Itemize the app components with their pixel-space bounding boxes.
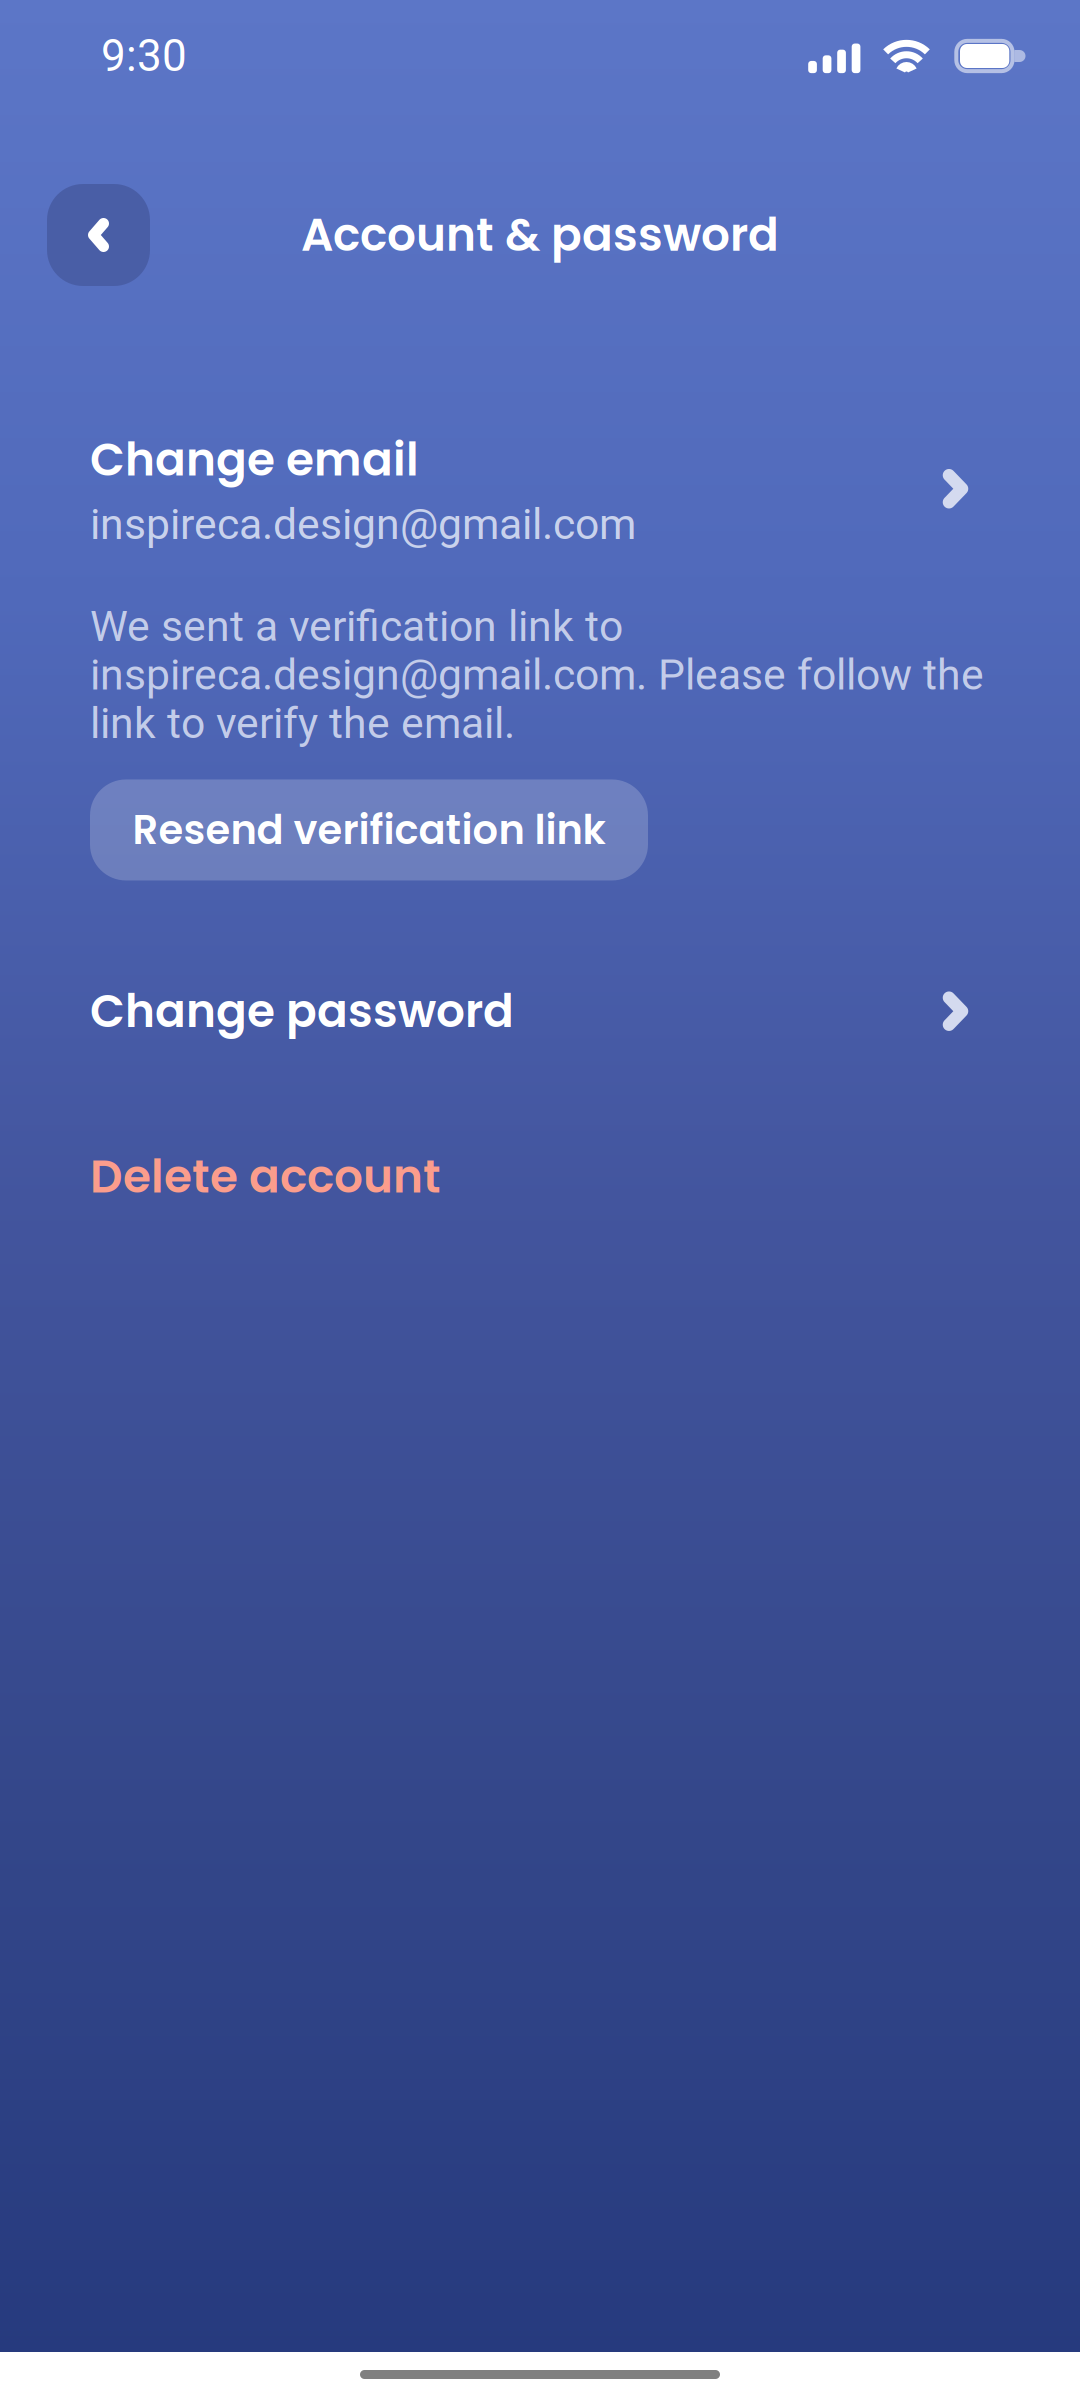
staticText: Account & password (301, 203, 779, 267)
staticText: Resend verification link (132, 802, 605, 858)
staticText: Change email (90, 428, 419, 491)
staticText: Delete account (90, 1145, 441, 1208)
staticText: Change password (90, 979, 514, 1043)
button[interactable]: Change email (90, 428, 990, 549)
staticText: 9:30 (101, 30, 187, 82)
button[interactable]: Resend verification link (90, 779, 648, 880)
staticText: inspireca.design@gmail.com (90, 499, 636, 549)
button[interactable]: Change password (90, 979, 990, 1043)
button[interactable]: Back (47, 184, 150, 286)
button[interactable]: Delete account (90, 1145, 441, 1208)
staticText: We sent a verification link to inspireca… (90, 601, 984, 748)
